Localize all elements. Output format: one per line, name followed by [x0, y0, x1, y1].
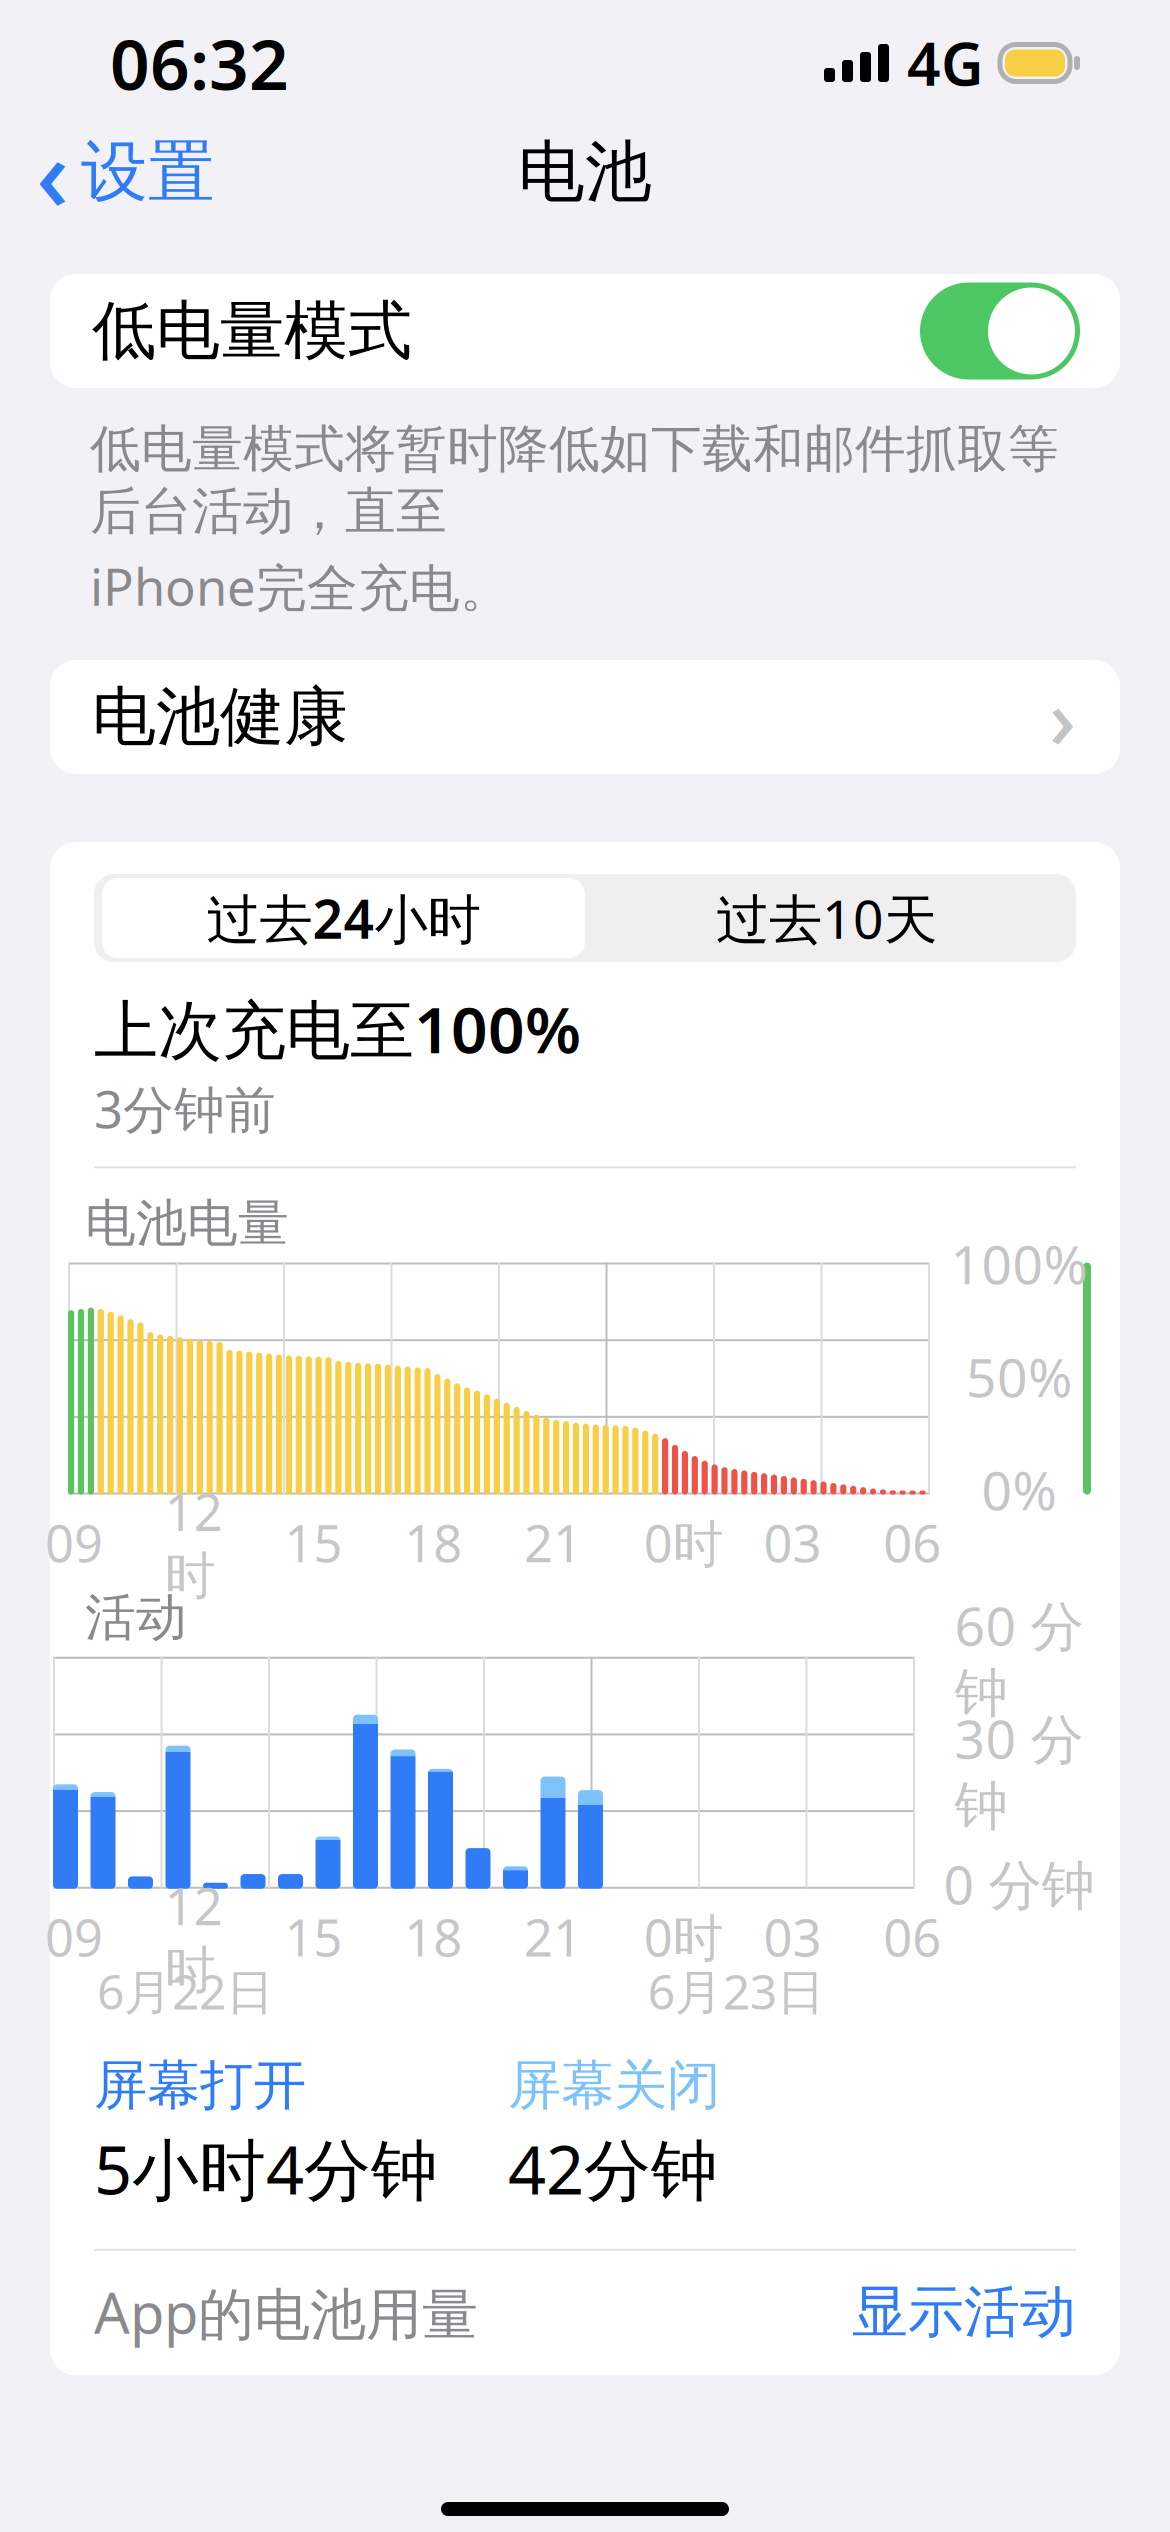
staticText: 6月22日 — [97, 1959, 274, 2023]
button[interactable]: 显示活动 — [852, 2278, 1076, 2346]
button[interactable]: ‹ — [22, 95, 229, 249]
staticText: 03 — [763, 1509, 821, 1576]
staticText: 60 分钟 — [954, 1590, 1083, 1726]
staticText: 100% — [950, 1228, 1087, 1299]
staticText: 上次充电至100% — [94, 986, 581, 1071]
staticText: 12时 — [165, 1478, 223, 1607]
staticText: 过去24小时 — [206, 883, 480, 953]
staticText: ‹ — [36, 105, 69, 239]
staticText: 0时 — [644, 1903, 724, 1970]
button[interactable]: 过去10天 — [585, 878, 1068, 958]
staticText: 活动 — [85, 1586, 187, 1649]
staticText: 电池 — [518, 131, 652, 213]
staticText: 50% — [966, 1341, 1072, 1412]
staticText: 42分钟 — [508, 2124, 718, 2213]
staticText: 电池电量 — [85, 1192, 289, 1254]
staticText: 30 分钟 — [954, 1703, 1083, 1839]
staticText: 06 — [883, 1509, 941, 1576]
staticText: 0 分钟 — [943, 1848, 1094, 1919]
staticText: 3分钟前 — [94, 1075, 276, 1142]
staticText: 15 — [284, 1509, 342, 1576]
staticText: 显示活动 — [852, 2278, 1076, 2346]
staticText: 12时 — [165, 1872, 223, 2001]
staticText: 18 — [404, 1509, 462, 1576]
staticText: App的电池用量 — [94, 2275, 478, 2349]
staticText: 4G — [907, 24, 984, 102]
staticText: 低电量模式 — [92, 292, 412, 370]
staticText: 电池健康 — [92, 678, 348, 756]
staticText: 18 — [404, 1903, 462, 1970]
staticText: 5小时4分钟 — [94, 2124, 438, 2213]
staticText: 21 — [524, 1509, 582, 1576]
staticText: 0% — [981, 1454, 1056, 1525]
staticText: iPhone完全充电。 — [90, 552, 511, 620]
staticText: › — [1049, 662, 1076, 772]
staticText: 屏幕关闭 — [508, 2053, 720, 2118]
staticText: 06 — [883, 1903, 941, 1970]
staticText: 低电量模式将暂时降低如下载和邮件抓取等后台活动，直至 — [90, 418, 1059, 542]
staticText: 设置 — [81, 131, 215, 213]
staticText: 屏幕打开 — [94, 2053, 306, 2118]
staticText: 0时 — [644, 1509, 724, 1576]
button[interactable]: 过去24小时 — [102, 878, 585, 958]
staticText: 6月23日 — [648, 1959, 825, 2023]
button[interactable]: 电池健康 — [50, 660, 1120, 774]
staticText: 09 — [45, 1509, 103, 1576]
staticText: 21 — [524, 1903, 582, 1970]
staticText: 09 — [45, 1903, 103, 1970]
staticText: 过去10天 — [716, 883, 937, 953]
staticText: 03 — [763, 1903, 821, 1970]
button[interactable]: 低电量模式 — [50, 274, 1120, 388]
staticText: 15 — [284, 1903, 342, 1970]
staticText: 06:32 — [110, 17, 289, 109]
